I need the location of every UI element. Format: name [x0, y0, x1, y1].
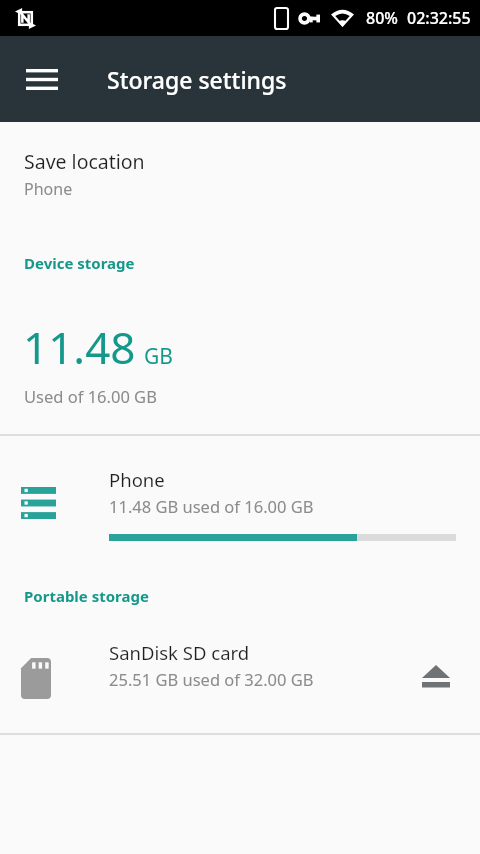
staticText: 25.51 GB used of 32.00 GB — [109, 668, 314, 690]
staticText: SanDisk SD card — [109, 640, 250, 665]
staticText: Phone — [109, 467, 165, 492]
staticText: 80% — [366, 7, 398, 29]
staticText: Device storage — [24, 253, 135, 273]
staticText: GB — [144, 342, 173, 371]
staticText: Save location — [24, 148, 145, 175]
button[interactable]: Open navigation drawer — [18, 55, 66, 103]
staticText: 11.48 — [23, 317, 136, 377]
staticText: Portable storage — [24, 586, 149, 606]
staticText: Phone — [24, 178, 73, 200]
staticText: Storage settings — [107, 64, 287, 95]
staticText: 11.48 GB used of 16.00 GB — [109, 495, 314, 517]
button[interactable]: SanDisk SD card — [0, 640, 480, 699]
staticText: Used of 16.00 GB — [24, 385, 157, 407]
button[interactable]: Phone — [0, 436, 480, 541]
staticText: 02:32:55 — [407, 7, 471, 29]
button[interactable]: Save location — [0, 148, 480, 200]
button[interactable]: Eject SanDisk SD card — [414, 654, 458, 698]
